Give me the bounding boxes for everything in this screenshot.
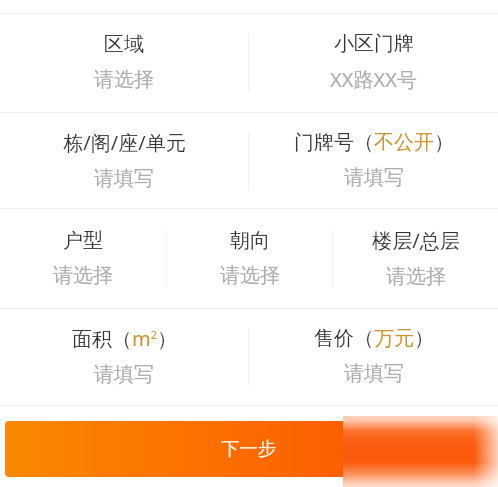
button[interactable]: 小区门牌 [249, 14, 498, 112]
button[interactable]: 楼层/总层 [333, 209, 498, 308]
button[interactable]: 朝向 [167, 209, 332, 308]
staticText: 户型 [63, 228, 103, 253]
staticText: 区域 [104, 32, 144, 57]
staticText: XX路XX号 [330, 66, 417, 93]
staticText: 下一步 [221, 437, 277, 460]
button[interactable]: 栋/阁/座/单元 [0, 113, 248, 208]
button[interactable]: 面积（m2） [0, 309, 248, 405]
staticText: 小区门牌 [334, 31, 414, 56]
button[interactable]: 下一步 [5, 421, 493, 477]
button[interactable]: 门牌号（不公开） [249, 113, 498, 208]
staticText: 请选择 [94, 67, 154, 92]
staticText: 楼层/总层 [372, 227, 460, 254]
staticText: 售价（万元） [314, 326, 434, 351]
staticText: 门牌号（不公开） [294, 130, 454, 155]
button[interactable]: 户型 [0, 209, 166, 308]
staticText: 栋/阁/座/单元 [63, 129, 186, 156]
staticText: 请填写 [344, 361, 404, 386]
button[interactable]: 区域 [0, 14, 248, 112]
staticText: 面积（m2） [72, 325, 177, 352]
staticText: 请填写 [344, 165, 404, 190]
staticText: 朝向 [230, 228, 270, 253]
staticText: 请选择 [386, 264, 446, 289]
staticText: 请选择 [220, 263, 280, 288]
staticText: 请填写 [94, 166, 154, 191]
staticText: 请选择 [53, 263, 113, 288]
button[interactable]: 售价（万元） [249, 309, 498, 405]
staticText: 请填写 [94, 362, 154, 387]
